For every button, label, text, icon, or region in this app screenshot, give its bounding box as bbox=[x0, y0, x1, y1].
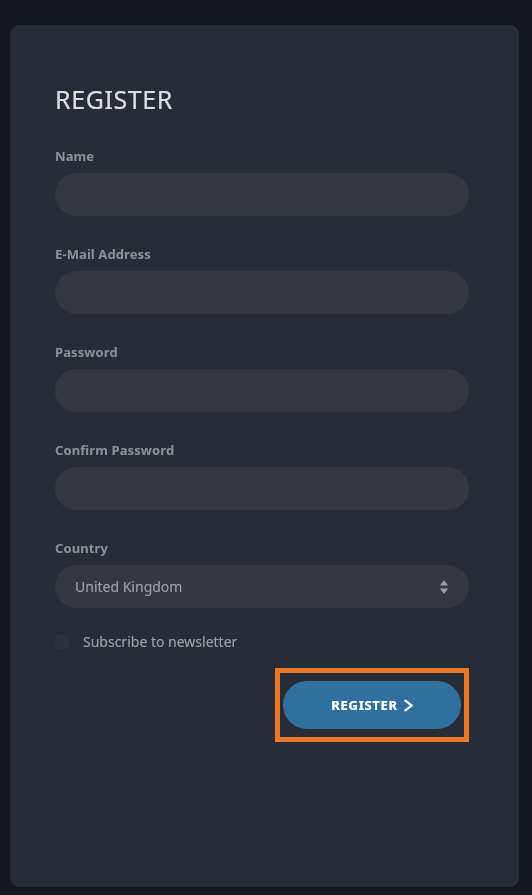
staticText: E-Mail Address bbox=[55, 245, 151, 263]
staticText: United Kingdom bbox=[75, 577, 183, 596]
button[interactable]: United Kingdom bbox=[55, 565, 469, 608]
button[interactable]: Subscribe to newsletter bbox=[55, 632, 238, 651]
staticText: Name bbox=[55, 147, 95, 165]
staticText: Country bbox=[55, 539, 108, 557]
staticText: REGISTER bbox=[55, 82, 174, 116]
staticText: Confirm Password bbox=[55, 441, 175, 459]
staticText: Subscribe to newsletter bbox=[83, 632, 238, 651]
staticText: REGISTER bbox=[331, 696, 398, 714]
staticText: Password bbox=[55, 343, 118, 361]
button[interactable]: REGISTER bbox=[275, 668, 469, 742]
